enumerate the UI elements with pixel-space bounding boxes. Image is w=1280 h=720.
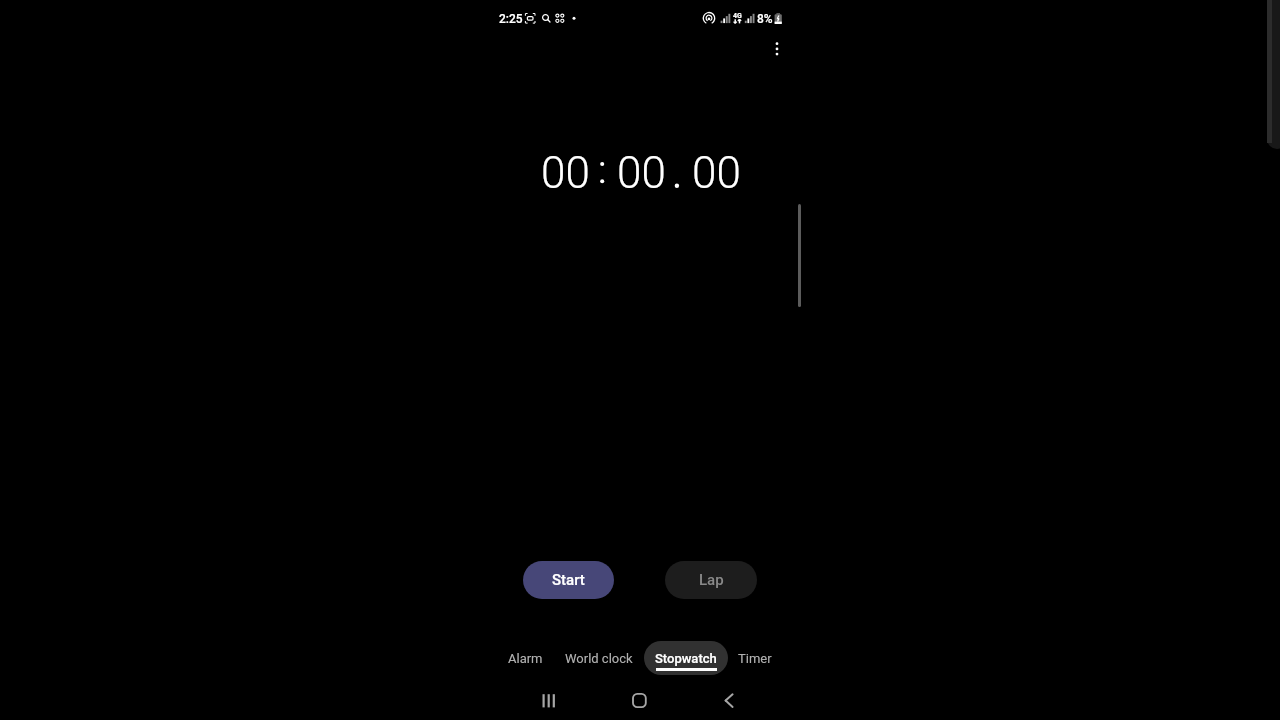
staticText: 4G <box>733 12 742 20</box>
button[interactable]: Back <box>713 684 745 716</box>
staticText: Start <box>552 571 585 589</box>
staticText: 8% <box>757 12 773 26</box>
button[interactable]: Start <box>523 561 614 599</box>
button[interactable]: World clock <box>559 641 638 675</box>
button[interactable]: Lap <box>665 561 757 599</box>
staticText: Stopwatch <box>655 651 717 666</box>
staticText: Alarm <box>508 651 543 666</box>
staticText: 00 <box>541 147 590 199</box>
button[interactable]: Timer <box>730 641 780 675</box>
staticText: Timer <box>738 651 772 666</box>
staticText: 00 <box>692 147 741 199</box>
staticText: 2:25 <box>499 12 523 26</box>
button[interactable]: Alarm <box>500 641 550 675</box>
button[interactable]: Home <box>623 684 655 716</box>
staticText: Lap <box>699 571 724 589</box>
staticText: World clock <box>565 651 633 666</box>
button[interactable]: Recent apps <box>532 684 564 716</box>
button[interactable]: More options <box>762 35 791 64</box>
staticText: 00 <box>617 147 666 199</box>
button[interactable]: Stopwatch <box>644 641 728 675</box>
